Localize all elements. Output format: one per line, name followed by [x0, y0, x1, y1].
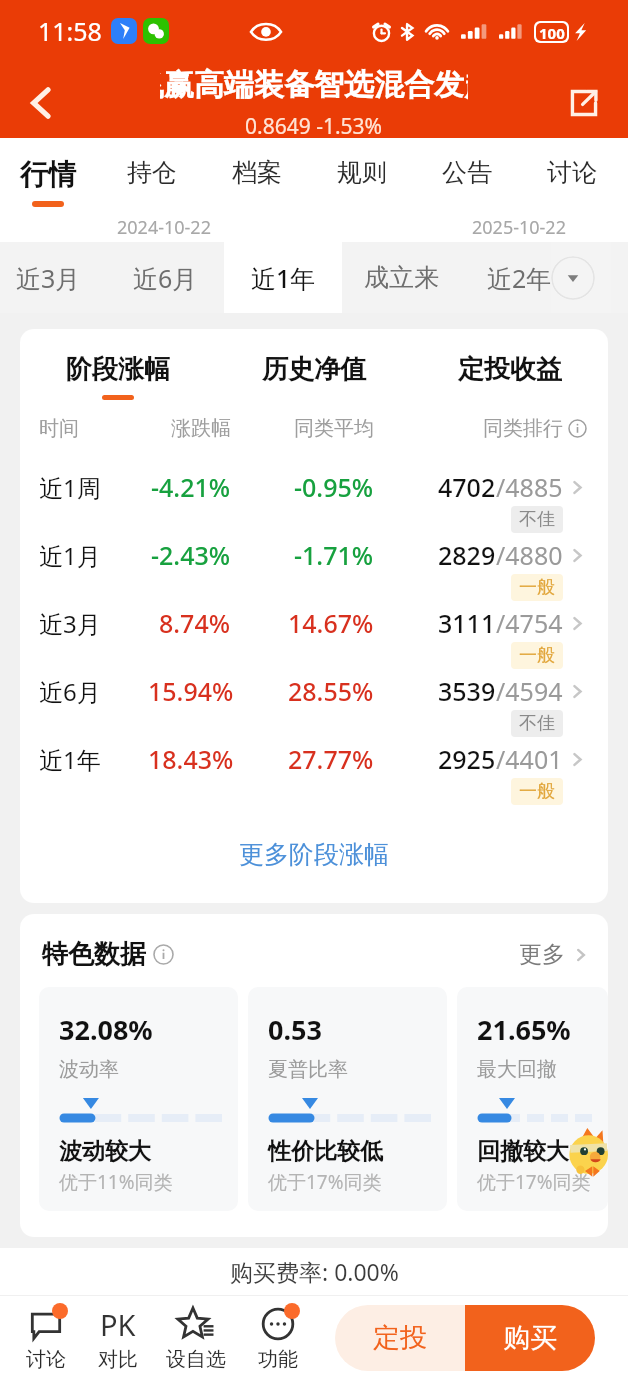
staticText: /4880	[496, 538, 563, 572]
staticText: 回撤较大	[477, 1137, 569, 1166]
button[interactable]: Share	[550, 69, 618, 137]
button[interactable]: 近1年	[20, 738, 608, 806]
staticText: 讨论	[547, 157, 597, 188]
button[interactable]: 更多	[519, 940, 590, 969]
button[interactable]: 持仓	[100, 138, 204, 212]
staticText: 档案	[232, 157, 282, 188]
staticText: 近1月	[39, 539, 150, 572]
button[interactable]: More periods	[551, 256, 595, 300]
staticText: 优于11%同类	[59, 1169, 173, 1195]
staticText: 购买费率: 0.00%	[230, 1256, 399, 1287]
staticText: 2024-10-22	[117, 215, 211, 240]
staticText: /4754	[496, 606, 563, 640]
staticText: 波动较大	[59, 1137, 151, 1166]
staticText: 一般	[519, 644, 555, 667]
button[interactable]: 购买	[465, 1305, 595, 1371]
button[interactable]: 近1月	[20, 534, 608, 602]
staticText: 近1年	[39, 743, 150, 776]
staticText: 3539	[438, 674, 496, 708]
staticText: 不佳	[519, 712, 555, 735]
button[interactable]: Back	[8, 69, 76, 137]
staticText: 近6月	[39, 675, 150, 708]
staticText: 夏普比率	[268, 1057, 348, 1082]
staticText: 特色数据	[42, 938, 146, 971]
staticText: 32.08%	[59, 1011, 153, 1048]
staticText: 定投	[373, 1321, 427, 1355]
staticText: 优于17%同类	[477, 1169, 591, 1195]
staticText: 阶段涨幅	[66, 353, 170, 386]
button[interactable]: 成立来	[342, 242, 460, 313]
staticText: 购买	[503, 1321, 557, 1355]
staticText: 18.43%	[148, 742, 234, 776]
staticText: -0.95%	[294, 470, 374, 504]
staticText: 更多	[519, 940, 565, 969]
staticText: 近1周	[39, 471, 150, 504]
staticText: PK	[100, 1305, 136, 1343]
staticText: 更多阶段涨幅	[239, 839, 389, 870]
staticText: 8.74%	[159, 606, 231, 640]
staticText: 一般	[519, 780, 555, 803]
staticText: -4.21%	[151, 470, 231, 504]
staticText: 行情	[20, 157, 76, 192]
staticText: 持仓	[127, 157, 177, 188]
staticText: 2925	[438, 742, 496, 776]
staticText: 28.55%	[288, 674, 374, 708]
staticText: 11:58	[38, 14, 102, 48]
button[interactable]: 21.65%	[457, 987, 608, 1211]
staticText: 不佳	[519, 508, 555, 531]
button[interactable]: 近1年	[224, 242, 342, 313]
staticText: 27.77%	[288, 742, 374, 776]
button[interactable]: 近2年	[460, 242, 578, 313]
button[interactable]: 功能	[238, 1296, 318, 1380]
button[interactable]: 近1周	[20, 466, 608, 534]
button[interactable]: 讨论	[6, 1296, 86, 1380]
staticText: 近3月	[39, 607, 150, 640]
button[interactable]: 近3月	[20, 602, 608, 670]
staticText: 0.8649 -1.53%	[245, 112, 383, 138]
staticText: 定投收益	[458, 353, 562, 386]
button[interactable]: 历史净值	[216, 329, 412, 410]
staticText: 成立来	[364, 262, 439, 293]
staticText: 对比	[98, 1347, 138, 1372]
staticText: 近3月	[16, 261, 81, 295]
staticText: 14.67%	[288, 606, 374, 640]
button[interactable]: 规则	[309, 138, 414, 212]
staticText: /4885	[496, 470, 563, 504]
staticText: 同类排行	[483, 416, 563, 441]
staticText: 性价比较低	[268, 1137, 383, 1166]
staticText: 2025-10-22	[472, 215, 566, 240]
staticText: 涨跌幅	[150, 416, 231, 441]
button[interactable]: 定投	[335, 1305, 465, 1371]
staticText: 2829	[438, 538, 496, 572]
button[interactable]: 讨论	[519, 138, 624, 212]
staticText: 近2年	[487, 261, 552, 295]
staticText: 历史净值	[262, 353, 366, 386]
button[interactable]: 设自选	[156, 1296, 236, 1380]
button[interactable]: 阶段涨幅	[20, 329, 216, 410]
staticText: 同类平均	[231, 416, 374, 441]
staticText: /4401	[496, 742, 563, 776]
staticText: 近1年	[251, 261, 316, 295]
staticText: 波动率	[59, 1057, 119, 1082]
staticText: 公告	[442, 157, 492, 188]
button[interactable]: 0.53	[248, 987, 447, 1211]
button[interactable]: 近6月	[20, 670, 608, 738]
staticText: 最大回撤	[477, 1057, 557, 1082]
button[interactable]: 公告	[414, 138, 519, 212]
button[interactable]: 定投收益	[412, 329, 608, 410]
button[interactable]: 档案	[204, 138, 309, 212]
button[interactable]: 更多阶段涨幅	[20, 806, 608, 903]
staticText: 讨论	[26, 1347, 66, 1372]
button[interactable]: 近3月	[0, 242, 107, 313]
staticText: 飞赢高端装备智选混合发起	[160, 66, 468, 104]
staticText: 一般	[519, 576, 555, 599]
staticText: -2.43%	[151, 538, 231, 572]
button[interactable]: 行情	[0, 138, 100, 212]
staticText: 100	[539, 23, 565, 41]
staticText: 优于17%同类	[268, 1169, 382, 1195]
button[interactable]: PK	[78, 1296, 158, 1380]
staticText: 3111	[438, 606, 496, 640]
button[interactable]: 近6月	[107, 242, 224, 313]
staticText: 功能	[258, 1347, 298, 1372]
button[interactable]: 32.08%	[39, 987, 238, 1211]
